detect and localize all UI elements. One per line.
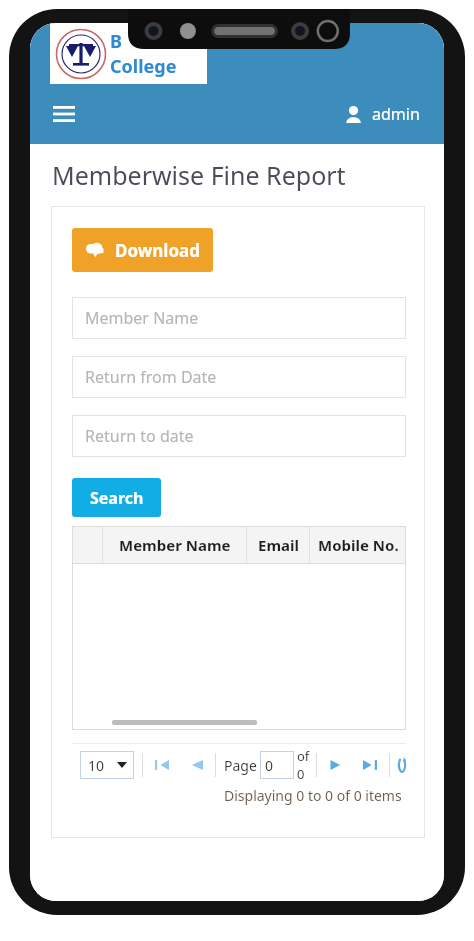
staticText: 0: [297, 765, 305, 783]
staticText: Return to date: [85, 425, 194, 447]
button[interactable]: Member Name: [103, 526, 246, 563]
staticText: of: [297, 747, 310, 765]
button[interactable]: Next page: [325, 754, 347, 776]
staticText: admin: [372, 103, 420, 125]
button[interactable]: Previous page: [185, 754, 207, 776]
staticText: Download: [115, 239, 200, 262]
staticText: College: [110, 54, 177, 79]
button[interactable]: Return to date: [72, 415, 406, 457]
staticText: Mobile No.: [318, 535, 399, 555]
button[interactable]: Return from Date: [72, 356, 406, 398]
staticText: Search: [90, 487, 144, 509]
button[interactable]: [72, 526, 102, 563]
staticText: 10: [88, 756, 105, 775]
button[interactable]: Search: [72, 478, 161, 517]
button[interactable]: Mobile No.: [310, 526, 406, 563]
button[interactable]: 0: [260, 751, 294, 779]
button[interactable]: First page: [151, 754, 173, 776]
button[interactable]: Member Name: [72, 297, 406, 339]
button[interactable]: admin: [339, 95, 426, 133]
staticText: Email: [258, 535, 299, 555]
staticText: Member Name: [119, 535, 231, 555]
button[interactable]: Email: [247, 526, 309, 563]
staticText: B: [110, 29, 122, 54]
staticText: Memberwise Fine Report: [52, 158, 346, 192]
staticText: Displaying 0 to 0 of 0 items: [224, 786, 402, 805]
button[interactable]: Last page: [359, 754, 381, 776]
button[interactable]: Menu: [46, 96, 82, 132]
button[interactable]: Refresh: [398, 752, 406, 778]
staticText: Page: [224, 756, 257, 775]
button[interactable]: Page size: [80, 751, 134, 779]
staticText: 0: [265, 756, 274, 775]
button[interactable]: Download: [72, 228, 213, 272]
staticText: Return from Date: [85, 366, 217, 388]
staticText: Member Name: [85, 307, 199, 329]
